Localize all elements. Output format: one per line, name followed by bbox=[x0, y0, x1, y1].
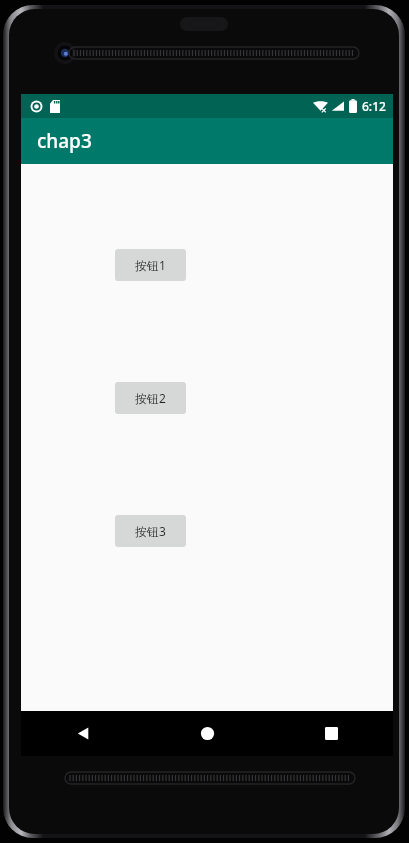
button[interactable]: 按钮3 bbox=[115, 515, 186, 547]
button[interactable]: 按钮2 bbox=[115, 382, 186, 414]
staticText: 按钮2 bbox=[135, 390, 166, 406]
staticText: chap3 bbox=[37, 128, 92, 154]
button[interactable]: Home bbox=[145, 711, 269, 756]
button[interactable]: Back bbox=[21, 711, 145, 756]
staticText: 按钮3 bbox=[135, 523, 166, 539]
button[interactable]: 按钮1 bbox=[115, 249, 186, 281]
staticText: 按钮1 bbox=[135, 257, 166, 273]
button[interactable]: Recent apps bbox=[269, 711, 393, 756]
staticText: 6:12 bbox=[362, 98, 386, 114]
